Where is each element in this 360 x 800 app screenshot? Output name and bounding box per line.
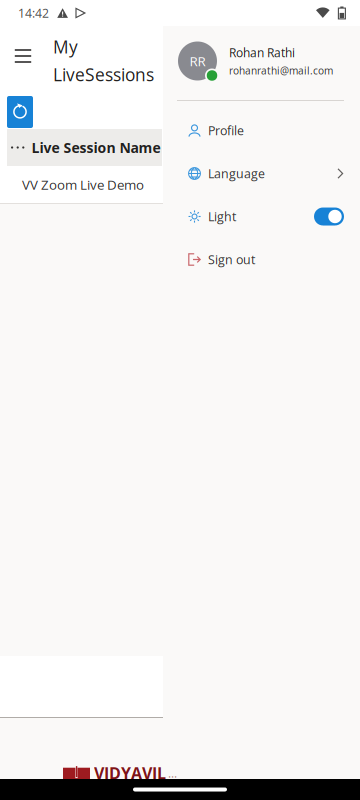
staticText: rohanrathi@mail.com: [229, 64, 333, 78]
staticText: Rohan Rathi: [229, 44, 295, 61]
button[interactable]: Menu: [3, 26, 43, 86]
staticText: Language: [208, 165, 265, 182]
button[interactable]: Light: [163, 195, 360, 238]
button[interactable]: RR: [163, 26, 360, 100]
staticText: 14:42: [18, 5, 49, 21]
staticText: Profile: [208, 122, 244, 139]
button[interactable]: Sign out: [163, 238, 360, 281]
staticText: ...: [168, 765, 177, 781]
staticText: My: [53, 35, 78, 59]
staticText: VIDYAVIL: [94, 762, 166, 784]
staticText: Live Session Name: [31, 138, 160, 157]
staticText: Sign out: [208, 251, 255, 268]
staticText: LiveSessions: [53, 63, 154, 86]
button[interactable]: Language: [163, 152, 360, 195]
staticText: VV Zoom Live Demo: [22, 175, 144, 194]
button[interactable]: Live Session Name: [7, 129, 162, 166]
button[interactable]: Profile: [163, 109, 360, 152]
button[interactable]: Refresh: [7, 96, 33, 128]
button[interactable]: VV Zoom Live Demo: [0, 166, 163, 203]
staticText: Light: [208, 208, 236, 225]
staticText: RR: [189, 52, 205, 70]
